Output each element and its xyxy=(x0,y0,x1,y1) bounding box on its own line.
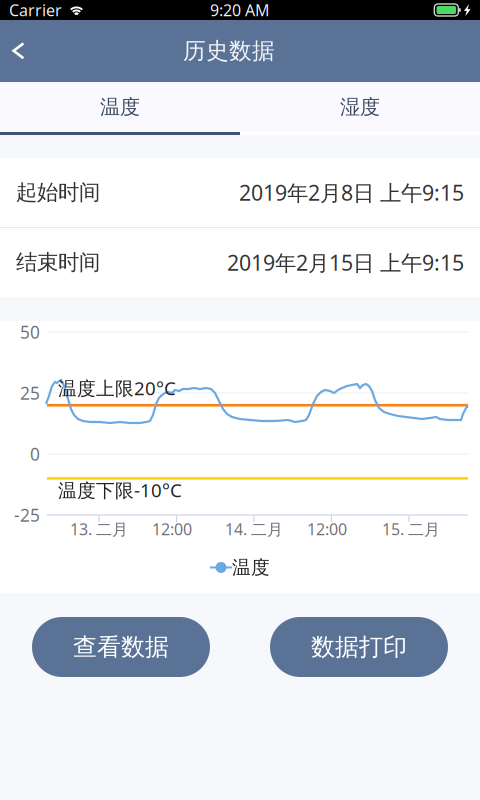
staticText: 温度 xyxy=(232,556,270,579)
staticText: 12:00 xyxy=(307,518,347,540)
button[interactable]: 数据打印 xyxy=(270,617,448,677)
staticText: 2019年2月8日 上午9:15 xyxy=(239,178,464,207)
staticText: 温度 xyxy=(100,95,140,119)
button[interactable]: 温度 xyxy=(0,82,240,132)
staticText: 2019年2月15日 上午9:15 xyxy=(227,248,464,277)
staticText: 12:00 xyxy=(152,518,192,540)
staticText: 查看数据 xyxy=(73,632,169,662)
staticText: 温度下限-10°C xyxy=(58,478,182,502)
staticText: Carrier xyxy=(9,0,62,21)
button[interactable]: 湿度 xyxy=(240,82,480,132)
staticText: 数据打印 xyxy=(311,632,407,662)
staticText: -25 xyxy=(14,503,40,526)
staticText: 结束时间 xyxy=(16,249,100,276)
staticText: 0 xyxy=(30,442,40,465)
staticText: 湿度 xyxy=(340,95,380,119)
staticText: 13. 二月 xyxy=(70,518,128,540)
button[interactable]: Back xyxy=(0,28,37,74)
staticText: 50 xyxy=(20,320,40,343)
staticText: 15. 二月 xyxy=(382,518,440,540)
staticText: 历史数据 xyxy=(183,37,275,65)
staticText: 9:20 AM xyxy=(210,0,270,21)
staticText: 温度上限20°C xyxy=(58,376,176,400)
button[interactable]: 查看数据 xyxy=(32,617,210,677)
staticText: 14. 二月 xyxy=(225,518,283,540)
staticText: 起始时间 xyxy=(16,179,100,206)
staticText: 25 xyxy=(20,381,40,404)
